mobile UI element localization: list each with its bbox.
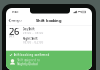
- staticText: 9:41: [12, 10, 19, 14]
- staticText: 26: [9, 25, 19, 37]
- staticText: Day Shift: [22, 28, 34, 31]
- button[interactable]: Manager: [6, 16, 24, 25]
- staticText: Shift booking: [36, 18, 62, 23]
- button[interactable]: Night Shift: [22, 37, 55, 44]
- staticText: Dec: [9, 34, 14, 38]
- staticText: Night Shift: [22, 37, 37, 40]
- staticText: Shift assigned to: [17, 58, 40, 62]
- button[interactable]: Day Shift: [22, 28, 55, 35]
- staticText: Manager: [11, 19, 22, 22]
- staticText: 18:00 - 02:00: [22, 41, 43, 44]
- staticText: Shift booking confirmed: [14, 53, 50, 57]
- staticText: Nightly Global: [17, 62, 38, 66]
- staticText: 09:00 - 18:00: [22, 31, 43, 35]
